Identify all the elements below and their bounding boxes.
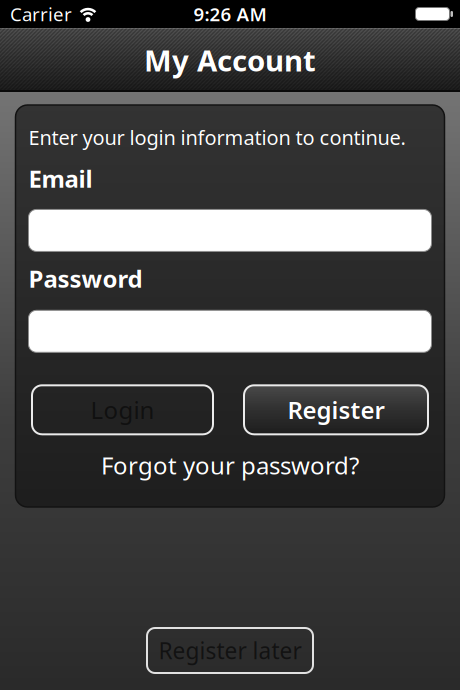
staticText: Email [28, 163, 92, 194]
staticText: My Account [144, 40, 316, 79]
staticText: Forgot your password? [101, 449, 359, 481]
staticText: Password [28, 262, 142, 294]
button[interactable]: Register later [147, 628, 313, 673]
button[interactable] [28, 209, 431, 251]
button[interactable]: Login [32, 385, 213, 434]
staticText: Login [90, 394, 154, 426]
staticText: Register [287, 394, 384, 426]
staticText: Register later [158, 635, 301, 665]
button[interactable]: Forgot your password? [101, 449, 359, 481]
staticText: Enter your login information to continue… [28, 124, 405, 151]
button[interactable] [28, 310, 431, 352]
staticText: Carrier [10, 2, 72, 26]
staticText: 9:26 AM [193, 2, 266, 26]
button[interactable]: Register [244, 385, 428, 434]
